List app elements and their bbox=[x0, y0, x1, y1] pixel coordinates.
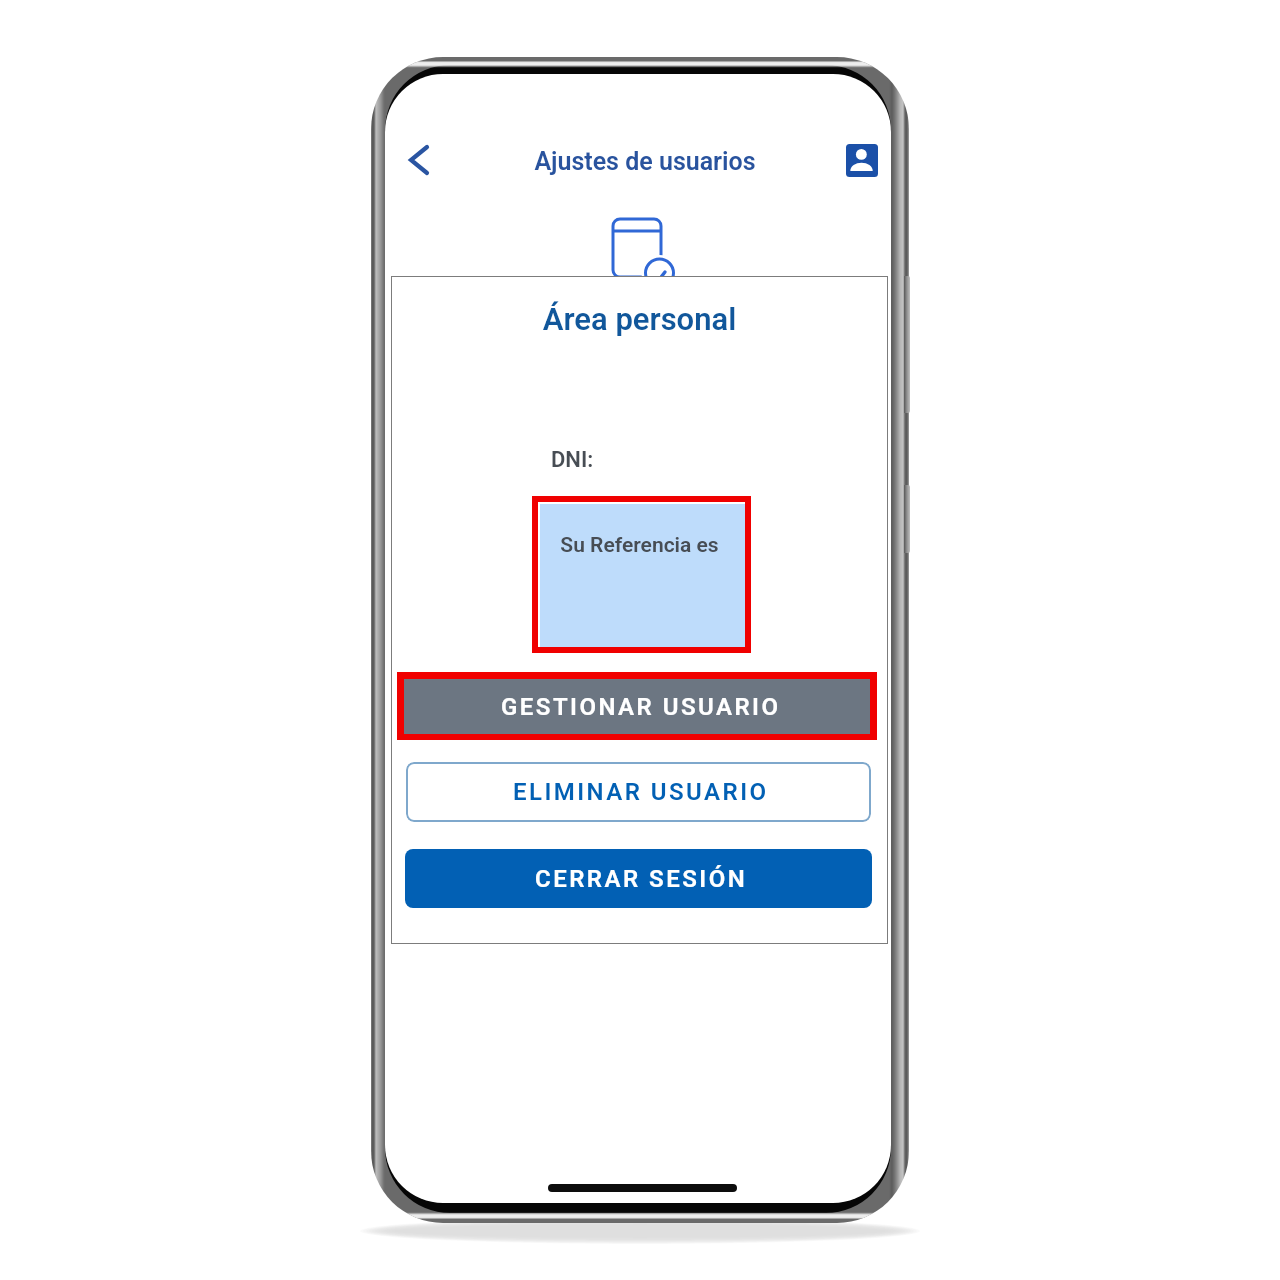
staticText: Su Referencia es bbox=[537, 533, 742, 558]
staticText: Ajustes de usuarios bbox=[392, 147, 891, 176]
staticText: ELIMINAR USUARIO bbox=[513, 778, 769, 806]
button[interactable]: User profile bbox=[838, 136, 886, 184]
button[interactable]: Back bbox=[395, 136, 443, 184]
staticText: Área personal bbox=[391, 301, 888, 337]
staticText: DNI: bbox=[551, 447, 594, 473]
staticText: CERRAR SESIÓN bbox=[535, 865, 748, 893]
button[interactable]: GESTIONAR USUARIO bbox=[404, 679, 870, 734]
button[interactable]: ELIMINAR USUARIO bbox=[406, 762, 871, 822]
staticText: GESTIONAR USUARIO bbox=[501, 693, 781, 721]
button[interactable]: CERRAR SESIÓN bbox=[405, 849, 872, 908]
